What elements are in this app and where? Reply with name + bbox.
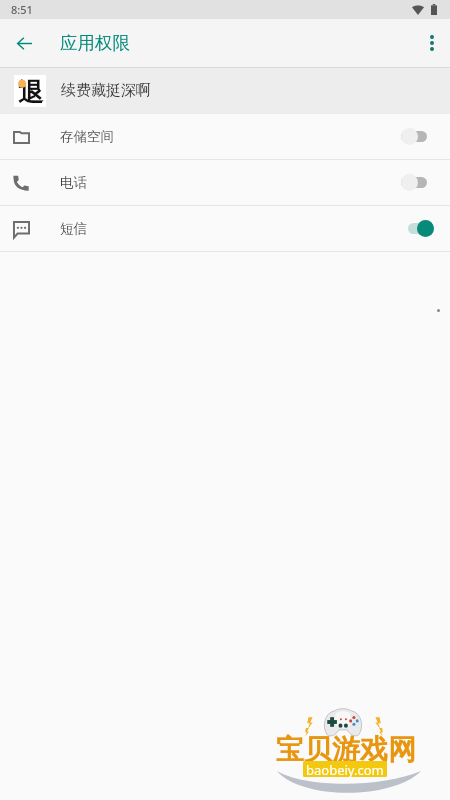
staticText: 电话: [60, 174, 87, 191]
staticText: 应用权限: [60, 32, 130, 54]
button[interactable]: Off: [401, 126, 427, 148]
staticText: 宝贝游戏网: [276, 732, 416, 767]
button[interactable]: Off: [401, 172, 427, 194]
staticText: 退: [18, 77, 43, 108]
staticText: baobeiy.com: [306, 761, 384, 777]
staticText: 续费藏挺深啊: [61, 81, 151, 100]
button[interactable]: Back: [8, 27, 40, 59]
button[interactable]: More options: [416, 27, 448, 59]
button[interactable]: On: [408, 218, 434, 240]
staticText: 短信: [60, 220, 87, 237]
staticText: 8:51: [11, 2, 33, 17]
button[interactable]: 短信: [0, 206, 450, 251]
staticText: 存储空间: [60, 128, 114, 145]
button[interactable]: 存储空间: [0, 114, 450, 159]
button[interactable]: 退: [0, 67, 450, 114]
button[interactable]: 电话: [0, 160, 450, 205]
